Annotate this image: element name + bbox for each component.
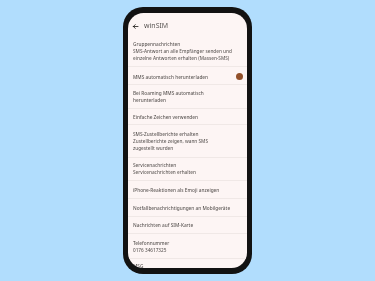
button[interactable]: Einfache Zeichen verwenden [128, 109, 247, 125]
button[interactable]: Nachrichten auf SIM-Karte [128, 217, 247, 234]
staticText: 0176 34617325 [133, 246, 167, 253]
staticText: iPhone-Reaktionen als Emoji anzeigen [133, 186, 220, 193]
staticText: SMS-Antwort an alle Empfänger senden und… [133, 47, 232, 61]
staticText: winSIM [144, 21, 169, 31]
button[interactable]: Servicenachrichten [128, 158, 247, 181]
button[interactable]: iPhone-Reaktionen als Emoji anzeigen [128, 181, 247, 199]
staticText: Zustellberichte zeigen, wann SMS zugeste… [133, 137, 208, 151]
staticText: Servicenachrichten [133, 161, 177, 168]
button[interactable]: Notfallbenachrichtigungen an Mobilgeräte [128, 199, 247, 217]
staticText: SMS-Zustellberichte erhalten [133, 130, 199, 137]
button[interactable]: Gruppennachrichten [128, 37, 247, 67]
button[interactable]: MMS automatisch herunterladen [128, 67, 247, 85]
staticText: Servicenachrichten erhalten [133, 168, 196, 175]
button[interactable]: Telefonnummer [128, 234, 247, 259]
staticText: Notfallbenachrichtigungen an Mobilgeräte [133, 204, 231, 211]
staticText: Bei Roaming MMS automatisch herunterlade… [133, 89, 204, 103]
staticText: Nachrichten auf SIM-Karte [133, 221, 194, 228]
button[interactable]: MSG [128, 259, 247, 268]
button[interactable]: Bei Roaming MMS automatisch herunterlade… [128, 85, 247, 109]
staticText: Gruppennachrichten [133, 40, 181, 47]
staticText: Telefonnummer [133, 239, 170, 246]
staticText: Einfache Zeichen verwenden [133, 113, 199, 120]
staticText: MSG [133, 262, 144, 268]
staticText: MMS automatisch herunterladen [133, 73, 209, 80]
button[interactable]: Back [130, 21, 140, 31]
button[interactable]: SMS-Zustellberichte erhalten [128, 125, 247, 158]
